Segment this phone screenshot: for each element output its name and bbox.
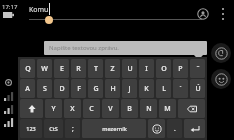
staticText: 123 [26, 125, 36, 132]
button[interactable]: X [64, 99, 81, 118]
staticText: T [94, 64, 98, 74]
staticText: R [76, 64, 81, 74]
staticText: 17:17 [2, 3, 18, 11]
staticText: S [43, 84, 47, 94]
staticText: Q [25, 64, 31, 74]
button[interactable]: ; [65, 119, 80, 138]
button[interactable]: Add recipient [196, 7, 210, 21]
button[interactable]: W [37, 59, 52, 78]
button[interactable]: A [20, 79, 35, 98]
staticText: ´ [179, 84, 182, 94]
staticText: F [77, 84, 81, 94]
button[interactable]: B [121, 99, 138, 118]
button[interactable]: 123 [20, 119, 42, 138]
button[interactable]: P [173, 59, 188, 78]
button[interactable]: ´ [173, 79, 188, 98]
button[interactable]: Emoji [211, 69, 231, 89]
button[interactable]: Attach [211, 43, 231, 63]
staticText: O [161, 64, 167, 74]
button[interactable]: D [54, 79, 69, 98]
staticText: Napište textovou zprávu. [49, 44, 119, 52]
staticText: C [89, 104, 94, 114]
button[interactable]: Backspace [178, 99, 205, 118]
button[interactable]: V [102, 99, 119, 118]
staticText: mezerník [102, 125, 127, 132]
staticText: . [174, 124, 176, 133]
staticText: A [25, 84, 30, 94]
button[interactable]: Enter [184, 119, 205, 138]
staticText: I [145, 64, 148, 74]
button[interactable]: E [54, 59, 69, 78]
button[interactable]: CtS [44, 119, 63, 138]
button[interactable]: More options [212, 0, 234, 28]
button[interactable]: mezerník [82, 119, 146, 138]
staticText: M [164, 104, 171, 114]
staticText: K [144, 84, 149, 94]
button[interactable]: T [88, 59, 103, 78]
button[interactable]: N [140, 99, 157, 118]
staticText: V [108, 104, 113, 114]
staticText: X [70, 104, 75, 114]
button[interactable]: Ú [190, 79, 205, 98]
button[interactable]: R [71, 59, 86, 78]
staticText: E [60, 64, 64, 74]
button[interactable]: ˇ [190, 59, 205, 78]
staticText: CtS [49, 125, 58, 132]
button[interactable]: . [167, 119, 182, 138]
button[interactable]: Z [105, 59, 120, 78]
button[interactable]: U [122, 59, 137, 78]
button[interactable]: Q [20, 59, 35, 78]
button[interactable]: Shift [20, 99, 43, 118]
staticText: Komu: [29, 5, 51, 15]
button[interactable]: I [139, 59, 154, 78]
button[interactable]: Y [45, 99, 62, 118]
staticText: U [127, 64, 133, 74]
staticText: Ú [195, 84, 201, 94]
staticText: G [93, 84, 99, 94]
button[interactable]: K [139, 79, 154, 98]
button[interactable]: S [37, 79, 52, 98]
button[interactable]: L [156, 79, 171, 98]
staticText: ˇ [196, 64, 200, 74]
button[interactable]: C [83, 99, 100, 118]
staticText: B [127, 104, 132, 114]
button[interactable]: M [159, 99, 176, 118]
button[interactable]: F [71, 79, 86, 98]
staticText: W [41, 64, 48, 74]
button[interactable]: O [156, 59, 171, 78]
staticText: Z [110, 64, 115, 74]
staticText: Y [51, 104, 56, 114]
staticText: N [146, 104, 152, 114]
button[interactable]: Emoji keyboard [148, 119, 165, 138]
button[interactable]: H [105, 79, 120, 98]
staticText: D [59, 84, 65, 94]
staticText: P [178, 64, 183, 74]
staticText: H [110, 84, 116, 94]
button[interactable]: Napište textovou zprávu. [44, 41, 207, 55]
staticText: L [162, 84, 166, 94]
button[interactable]: G [88, 79, 103, 98]
staticText: ; [72, 124, 74, 133]
button[interactable]: J [122, 79, 137, 98]
staticText: J [128, 84, 131, 94]
